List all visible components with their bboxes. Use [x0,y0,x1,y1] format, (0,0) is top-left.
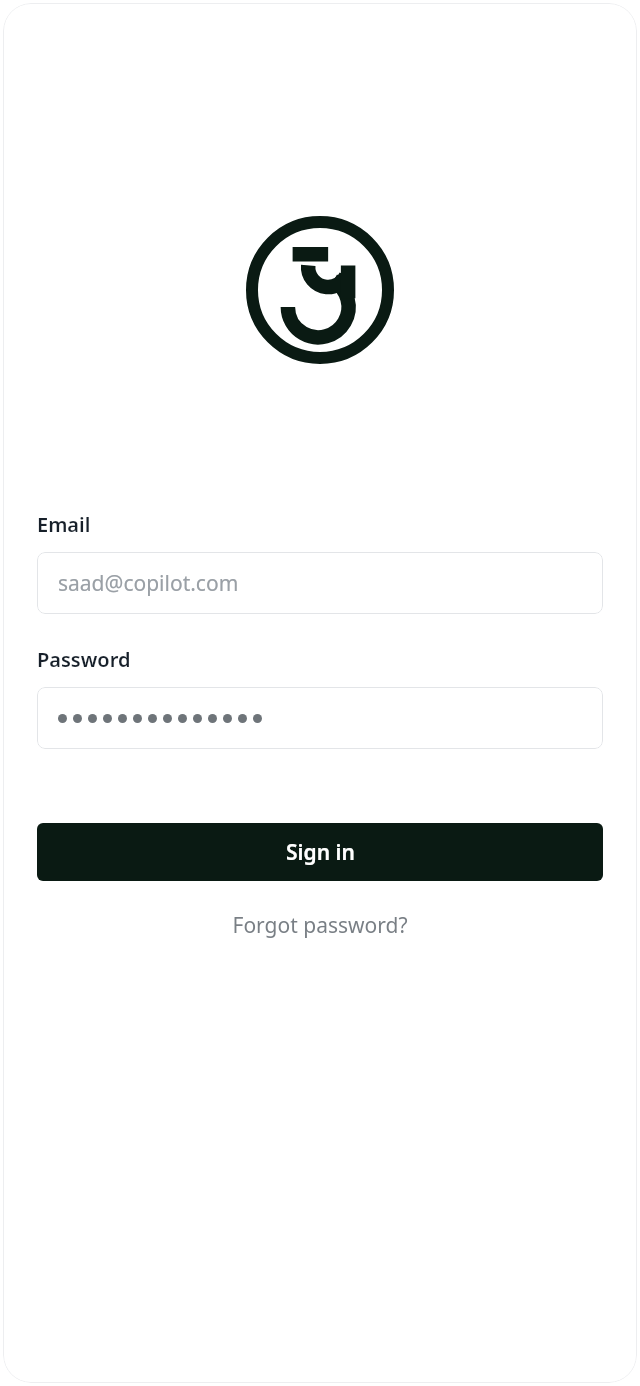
button[interactable] [37,687,603,749]
staticText: saad@copilot.com [58,569,239,598]
staticText: Password [37,646,131,673]
staticText: Sign in [286,838,355,867]
staticText: Email [37,511,91,538]
button[interactable]: Sign in [37,823,603,881]
staticText: Forgot password? [232,911,408,940]
button[interactable]: saad@copilot.com [37,552,603,614]
button[interactable]: Forgot password? [37,905,603,946]
